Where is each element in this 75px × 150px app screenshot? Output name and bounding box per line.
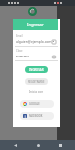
button[interactable]: INGRESAR — [25, 66, 48, 73]
button[interactable]: REGISTRARSE — [25, 78, 48, 85]
staticText: alguien@ejemplo.com — [16, 39, 52, 44]
staticText: Email — [16, 34, 23, 38]
button[interactable]: Back — [0, 140, 30, 150]
staticText: GOOGLE — [29, 102, 40, 106]
staticText: Ingresar — [27, 22, 44, 28]
button[interactable]: Home — [30, 140, 46, 150]
button[interactable]: GOOGLE — [20, 100, 54, 108]
staticText: FACEBOOK — [29, 114, 43, 118]
staticText: Inicia con — [29, 90, 44, 94]
staticText: INGRESAR — [29, 68, 44, 72]
staticText: REGISTRARSE — [28, 80, 45, 84]
button[interactable]: Recent apps — [46, 140, 75, 150]
staticText: •••••••••• — [16, 54, 29, 59]
staticText: Clave — [16, 49, 23, 53]
button[interactable]: FACEBOOK — [20, 112, 54, 120]
